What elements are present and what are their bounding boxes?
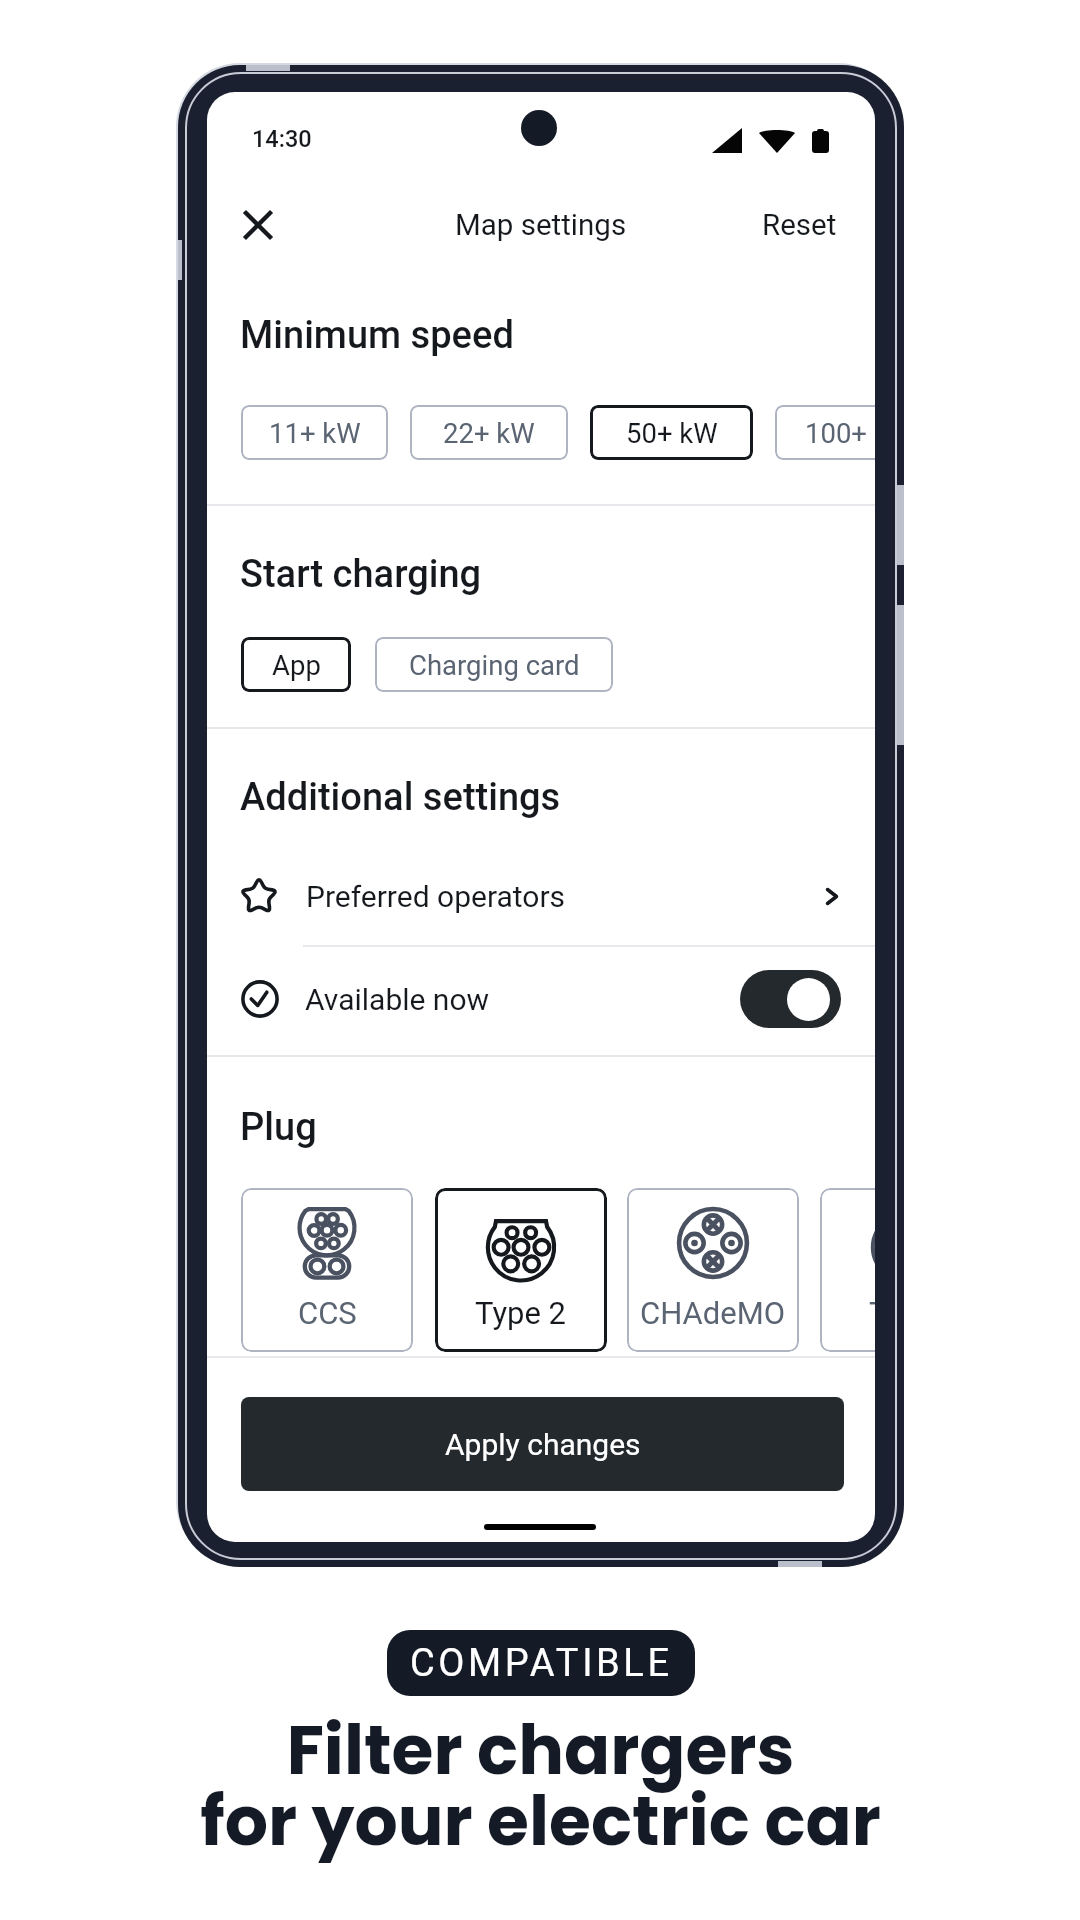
staticText: Apply changes xyxy=(445,1427,641,1462)
staticText: 14:30 xyxy=(252,125,312,153)
staticText: Type 2 xyxy=(475,1295,567,1331)
staticText: Filter chargers for your electric car xyxy=(200,1703,881,1869)
staticText: Charging card xyxy=(409,649,580,681)
staticText: 100+ kW xyxy=(805,417,875,449)
staticText: CHAdeMO xyxy=(640,1295,786,1331)
staticText: Reset xyxy=(762,208,837,243)
button[interactable]: 50+ kW xyxy=(590,405,753,460)
staticText: Tesla xyxy=(869,1295,875,1331)
staticText: Plug xyxy=(240,1105,317,1150)
button[interactable]: COMPATIBLE xyxy=(387,1630,695,1696)
button[interactable]: 100+ kW xyxy=(775,405,875,460)
staticText: COMPATIBLE xyxy=(410,1641,673,1686)
staticText: 11+ kW xyxy=(269,417,361,449)
staticText: CCS xyxy=(298,1295,357,1331)
button[interactable]: 22+ kW xyxy=(410,405,568,460)
button[interactable]: Type 2 xyxy=(435,1188,607,1352)
button[interactable]: Available now toggle xyxy=(740,970,841,1028)
staticText: Start charging xyxy=(240,552,482,597)
staticText: Preferred operators xyxy=(306,879,566,914)
staticText: App xyxy=(272,649,321,681)
button[interactable]: Close xyxy=(218,185,298,265)
staticText: Additional settings xyxy=(240,775,561,820)
staticText: Available now xyxy=(305,982,490,1017)
button[interactable]: CCS xyxy=(241,1188,413,1352)
button[interactable]: Tesla xyxy=(820,1188,875,1352)
staticText: Map settings xyxy=(455,208,627,243)
button[interactable]: Available now xyxy=(207,949,875,1049)
button[interactable]: 11+ kW xyxy=(241,405,388,460)
button[interactable]: Charging card xyxy=(375,637,613,692)
button[interactable]: Apply changes xyxy=(241,1397,844,1491)
staticText: 22+ kW xyxy=(443,417,535,449)
staticText: Minimum speed xyxy=(240,313,514,358)
button[interactable]: Reset xyxy=(747,185,851,265)
staticText: 50+ kW xyxy=(626,417,718,449)
button[interactable]: CHAdeMO xyxy=(627,1188,799,1352)
button[interactable]: Preferred operators xyxy=(207,846,875,946)
button[interactable]: App xyxy=(241,637,351,692)
